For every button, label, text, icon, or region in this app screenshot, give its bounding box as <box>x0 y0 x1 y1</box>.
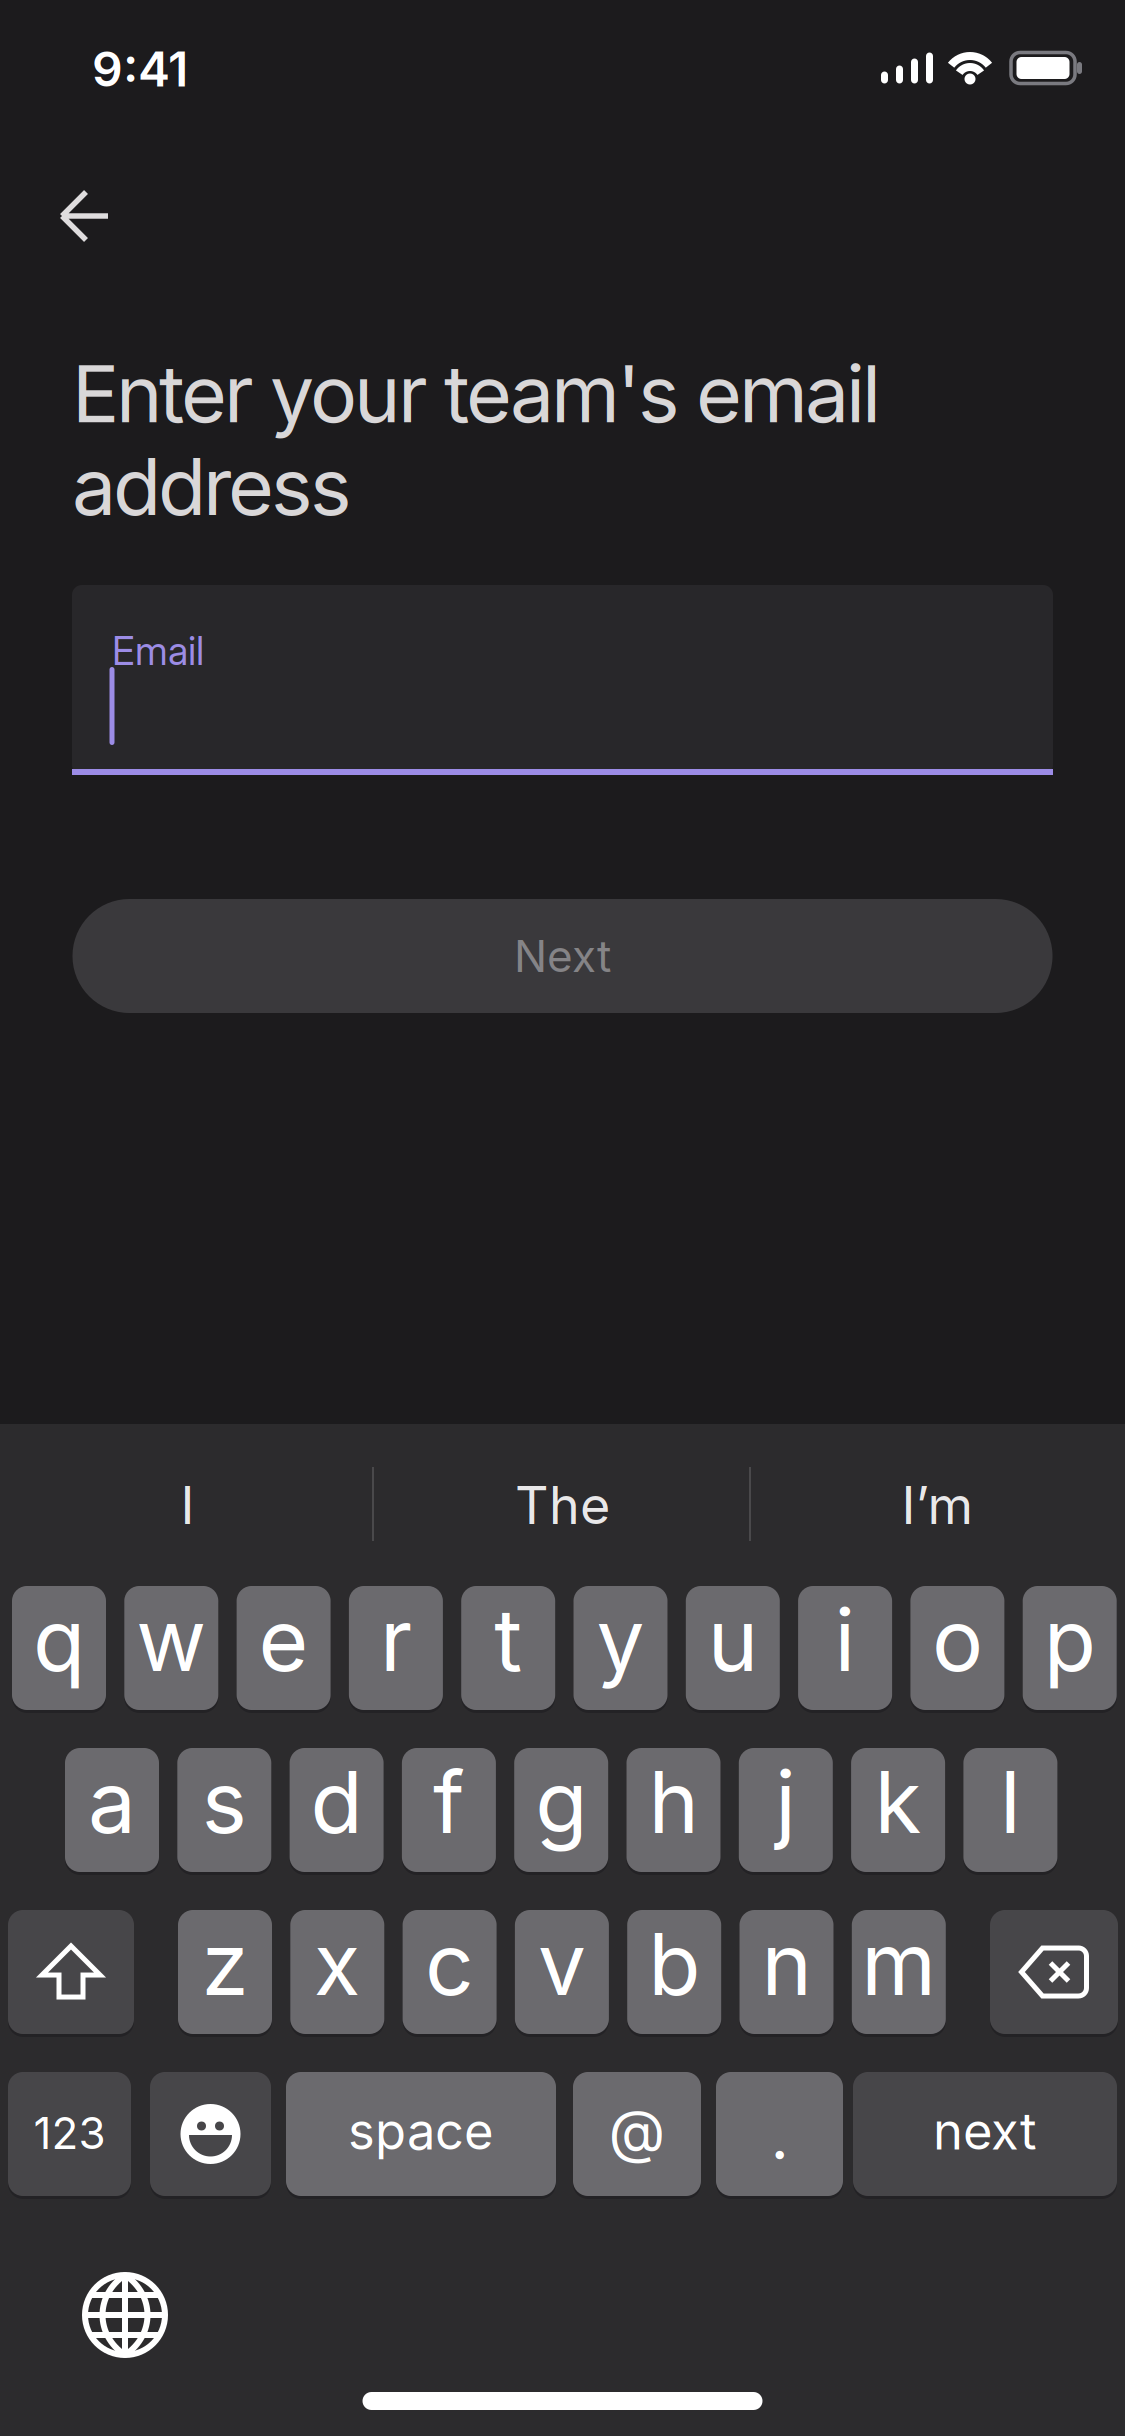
staticText: x <box>314 1914 361 2014</box>
button[interactable]: r <box>349 1586 443 1710</box>
staticText: I’m <box>901 1474 973 1536</box>
staticText: 9:41 <box>92 41 188 97</box>
staticText: i <box>835 1590 856 1690</box>
staticText: f <box>433 1752 465 1852</box>
button[interactable]: next <box>853 2072 1117 2196</box>
button[interactable]: c <box>403 1910 497 2034</box>
staticText: q <box>33 1590 85 1690</box>
button[interactable]: y <box>573 1586 667 1710</box>
button[interactable]: Back <box>59 189 111 243</box>
button[interactable]: j <box>739 1748 833 1872</box>
button[interactable]: o <box>910 1586 1004 1710</box>
button[interactable]: @ <box>573 2072 701 2196</box>
staticText: Next <box>514 930 611 982</box>
button[interactable]: d <box>290 1748 384 1872</box>
staticText: c <box>425 1914 474 2014</box>
staticText: u <box>708 1590 758 1690</box>
staticText: s <box>202 1752 247 1852</box>
staticText: I <box>180 1474 194 1536</box>
button[interactable]: n <box>739 1910 833 2034</box>
staticText: l <box>1000 1752 1021 1852</box>
button[interactable]: w <box>124 1586 218 1710</box>
button[interactable]: I’m <box>757 1445 1117 1565</box>
button[interactable]: m <box>852 1910 946 2034</box>
staticText: a <box>88 1752 136 1852</box>
staticText: p <box>1044 1590 1096 1690</box>
staticText: Enter your team's email address <box>72 347 881 533</box>
staticText: w <box>136 1590 206 1690</box>
staticText: j <box>775 1752 796 1852</box>
button[interactable]: s <box>177 1748 271 1872</box>
staticText: Email <box>112 628 204 674</box>
staticText: . <box>770 2098 788 2174</box>
staticText: t <box>494 1590 522 1690</box>
staticText: b <box>648 1914 700 2014</box>
staticText: The <box>515 1474 610 1536</box>
button[interactable]: p <box>1023 1586 1117 1710</box>
button[interactable]: a <box>65 1748 159 1872</box>
staticText: o <box>932 1590 983 1690</box>
staticText: n <box>761 1914 811 2014</box>
button[interactable]: u <box>686 1586 780 1710</box>
button[interactable]: space <box>286 2072 556 2196</box>
staticText: @ <box>608 2096 665 2166</box>
button[interactable]: f <box>402 1748 496 1872</box>
staticText: space <box>348 2101 494 2161</box>
button[interactable]: g <box>514 1748 608 1872</box>
button[interactable]: . <box>716 2072 843 2196</box>
button[interactable]: q <box>12 1586 106 1710</box>
staticText: y <box>596 1590 644 1690</box>
button[interactable]: b <box>627 1910 721 2034</box>
button[interactable]: I <box>7 1445 367 1565</box>
button[interactable]: The <box>382 1445 742 1565</box>
staticText: 123 <box>33 2107 105 2159</box>
button[interactable]: h <box>626 1748 720 1872</box>
button[interactable]: e <box>237 1586 331 1710</box>
button[interactable]: Email <box>72 585 1053 775</box>
button[interactable]: k <box>851 1748 945 1872</box>
button[interactable]: i <box>798 1586 892 1710</box>
button[interactable]: l <box>963 1748 1057 1872</box>
staticText: e <box>259 1590 309 1690</box>
staticText: v <box>538 1914 586 2014</box>
button[interactable]: Emoji <box>150 2072 271 2196</box>
button[interactable]: Next <box>72 899 1052 1013</box>
button[interactable]: 123 <box>8 2072 131 2196</box>
staticText: z <box>201 1914 248 2014</box>
button[interactable]: t <box>461 1586 555 1710</box>
button[interactable]: Delete <box>990 1910 1118 2034</box>
staticText: g <box>535 1752 587 1852</box>
staticText: next <box>933 2101 1037 2161</box>
staticText: d <box>311 1752 363 1852</box>
button[interactable]: x <box>290 1910 384 2034</box>
staticText: k <box>875 1752 922 1852</box>
staticText: r <box>380 1590 412 1690</box>
button[interactable]: Shift <box>8 1910 134 2034</box>
button[interactable]: v <box>515 1910 609 2034</box>
button[interactable]: z <box>178 1910 272 2034</box>
staticText: h <box>648 1752 698 1852</box>
staticText: m <box>861 1914 936 2014</box>
button[interactable]: Next keyboard <box>81 2271 169 2359</box>
